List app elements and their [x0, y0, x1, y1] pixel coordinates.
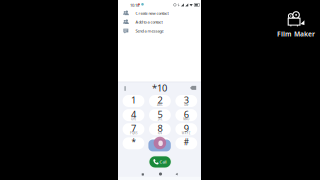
staticText: 3: [184, 94, 189, 106]
staticText: 2: [157, 94, 162, 106]
button[interactable]: *: [123, 137, 144, 149]
staticText: 6: [184, 108, 189, 120]
button[interactable]: 9: [175, 123, 197, 135]
button[interactable]: 4: [123, 109, 144, 121]
staticText: 1: [131, 94, 136, 106]
button[interactable]: 0: [149, 137, 171, 149]
staticText: #: [184, 137, 189, 147]
button[interactable]: 1: [123, 95, 144, 107]
staticText: GHI: [131, 117, 136, 121]
button[interactable]: Back: [175, 172, 179, 176]
button[interactable]: 3: [175, 95, 197, 107]
staticText: TUV: [157, 131, 162, 135]
staticText: 7: [131, 122, 136, 134]
staticText: 5: [157, 108, 162, 120]
staticText: Call: [160, 159, 167, 164]
staticText: JKL: [158, 117, 162, 121]
staticText: 4: [131, 108, 136, 120]
button[interactable]: 2: [149, 95, 171, 107]
staticText: Add to a contact: [135, 19, 162, 25]
button[interactable]: Add to a contact: [123, 18, 197, 25]
button[interactable]: #: [175, 137, 197, 149]
button[interactable]: 5: [149, 109, 171, 121]
button[interactable]: 6: [175, 109, 197, 121]
staticText: 10:18: [130, 2, 139, 8]
staticText: *10: [152, 82, 167, 94]
staticText: PQRS: [130, 131, 137, 135]
button[interactable]: 7: [123, 123, 144, 135]
button[interactable]: 8: [149, 123, 171, 135]
staticText: 9: [184, 122, 189, 134]
staticText: *: [131, 137, 135, 147]
button[interactable]: Send a message: [123, 27, 197, 34]
staticText: 0: [157, 136, 162, 148]
staticText: Create new contact: [135, 10, 168, 16]
button[interactable]: Call: [149, 156, 172, 168]
button[interactable]: Recents: [141, 173, 145, 176]
staticText: Send a message: [135, 28, 163, 33]
button[interactable]: Delete: [190, 86, 196, 90]
button[interactable]: Home: [158, 172, 163, 176]
staticText: DEF: [184, 103, 188, 107]
staticText: 8: [157, 122, 162, 134]
staticText: ABC: [157, 103, 163, 107]
staticText: WXYZ: [182, 131, 191, 135]
staticText: MNO: [183, 117, 189, 121]
button[interactable]: Create new contact: [123, 10, 197, 17]
staticText: Film Maker: [277, 30, 315, 38]
